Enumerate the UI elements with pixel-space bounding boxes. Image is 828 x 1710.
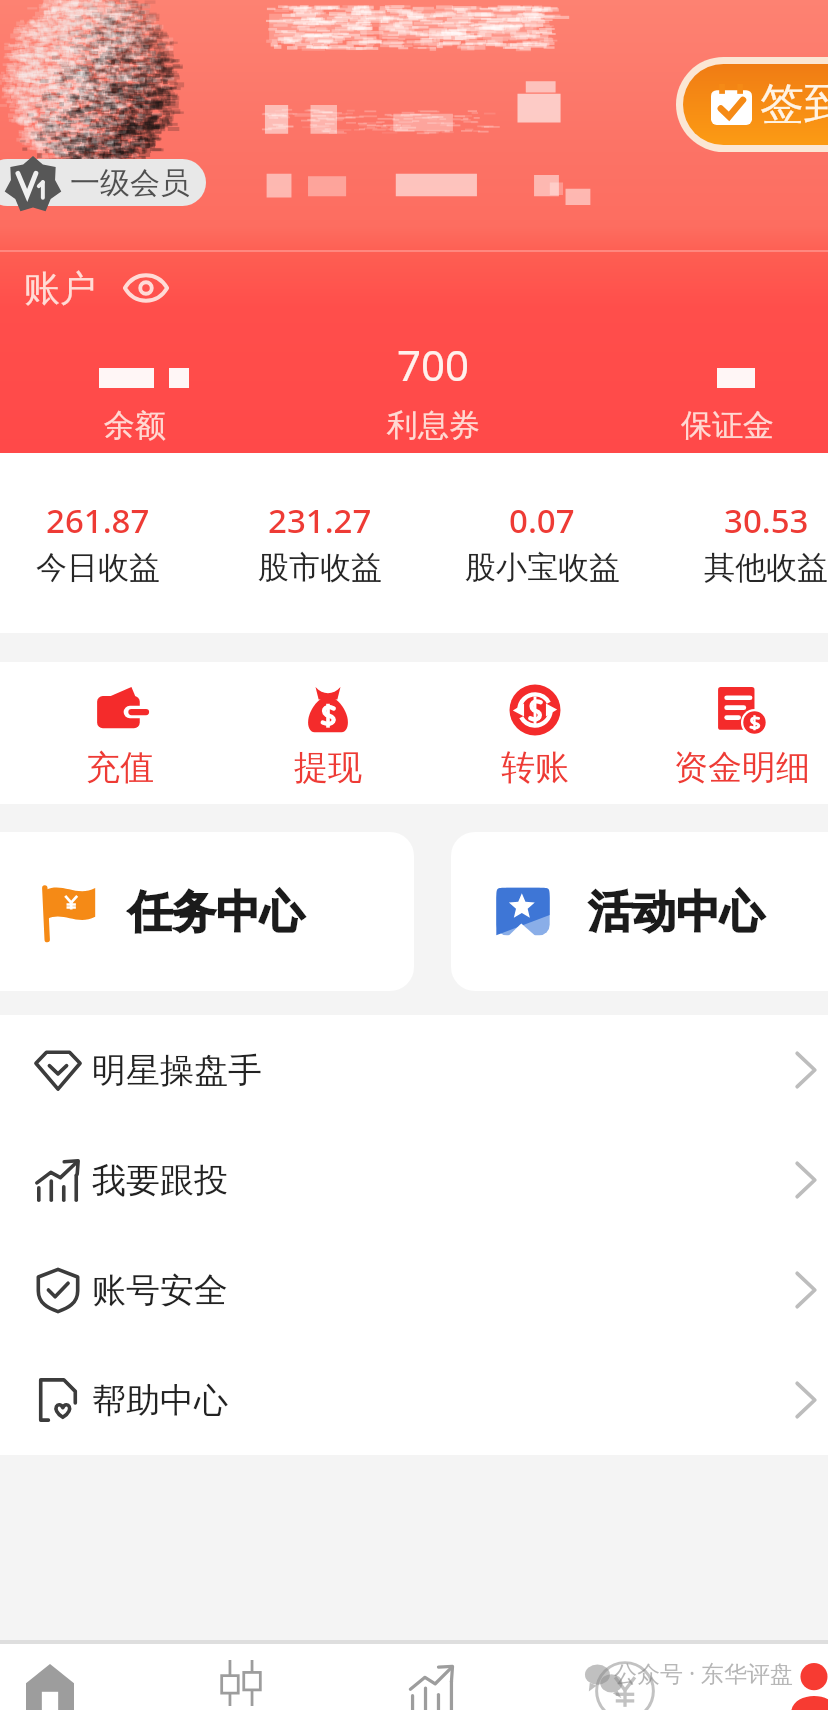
staticText: 一级会员: [70, 164, 190, 202]
staticText: 活动中心: [588, 885, 764, 940]
button[interactable]: 显示/隐藏金额: [120, 262, 172, 314]
staticText: 700: [397, 336, 470, 384]
staticText: 261.87: [46, 498, 150, 543]
button[interactable]: 231.27: [210, 498, 430, 587]
staticText: 转账: [501, 746, 569, 789]
button[interactable]: 帮助中心: [0, 1345, 828, 1455]
button[interactable]: 261.87: [0, 498, 208, 587]
staticText: 账号安全: [92, 1269, 228, 1312]
button[interactable]: 转账: [435, 684, 635, 789]
staticText: 公众号 · 东华评盘: [614, 1657, 794, 1688]
button[interactable]: 行情: [157, 1644, 325, 1710]
button[interactable]: 提现: [228, 684, 428, 789]
staticText: 我要跟投: [92, 1159, 228, 1202]
button[interactable]: 首页: [0, 1644, 134, 1710]
staticText: 231.27: [268, 498, 372, 543]
button[interactable]: 交易: [348, 1644, 516, 1710]
staticText: 充值: [86, 746, 154, 789]
button[interactable]: 签到: [683, 64, 828, 145]
staticText: 明星操盘手: [92, 1049, 262, 1092]
staticText: 签到: [760, 77, 828, 132]
staticText: 今日收益: [36, 548, 160, 587]
staticText: 0.07: [509, 498, 575, 543]
button[interactable]: 活动中心: [451, 832, 828, 991]
button[interactable]: 任务中心: [0, 832, 414, 991]
staticText: 提现: [294, 746, 362, 789]
staticText: 账户: [24, 266, 96, 311]
button[interactable]: 30.53: [656, 498, 828, 587]
staticText: 股小宝收益: [465, 548, 620, 587]
staticText: 其他收益: [704, 548, 828, 587]
button[interactable]: 我的: [730, 1644, 828, 1710]
staticText: 保证金: [681, 406, 774, 445]
button[interactable]: 一级会员: [0, 159, 206, 206]
button[interactable]: 明星操盘手: [0, 1015, 828, 1125]
button[interactable]: 充值: [20, 684, 220, 789]
staticText: 利息券: [387, 406, 480, 445]
staticText: 余额: [104, 406, 166, 445]
button[interactable]: 资金明细: [642, 684, 828, 789]
staticText: 任务中心: [128, 885, 304, 940]
button[interactable]: 账号安全: [0, 1235, 828, 1345]
button[interactable]: 0.07: [432, 498, 652, 587]
staticText: 30.53: [724, 498, 809, 543]
button[interactable]: 我要跟投: [0, 1125, 828, 1235]
staticText: 帮助中心: [92, 1379, 228, 1422]
staticText: 股市收益: [258, 548, 382, 587]
button[interactable]: 理财: [541, 1644, 709, 1710]
staticText: 资金明细: [674, 746, 810, 789]
